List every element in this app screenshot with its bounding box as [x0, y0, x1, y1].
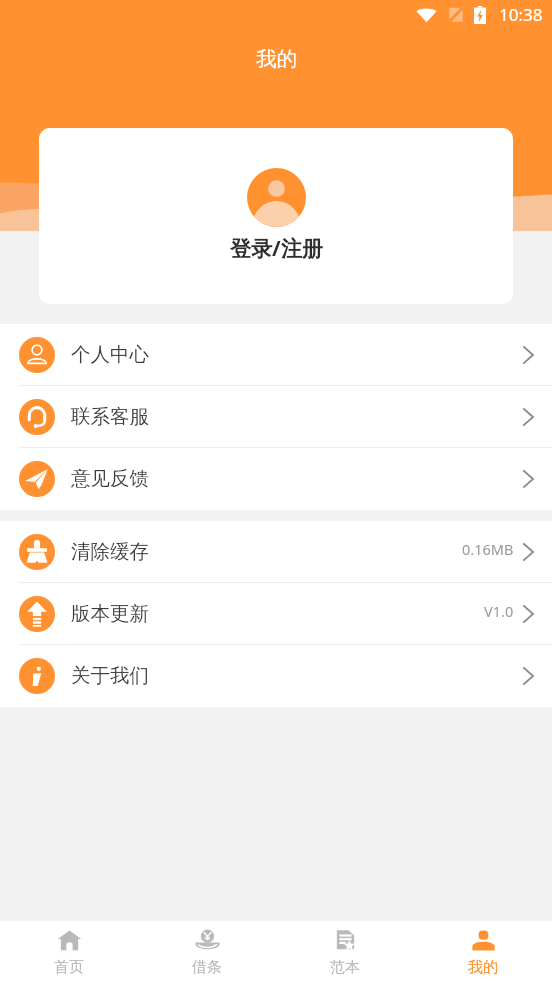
staticText: 我的 — [468, 958, 498, 977]
staticText: 借条 — [192, 958, 222, 977]
staticText: 首页 — [54, 958, 84, 977]
button[interactable]: 清除缓存 — [0, 521, 552, 583]
button[interactable]: 借条 — [138, 921, 276, 981]
staticText: 0.16MB — [462, 539, 514, 559]
staticText: V1.0 — [484, 601, 514, 621]
staticText: 版本更新 — [71, 601, 149, 626]
button[interactable]: 意见反馈 — [0, 448, 552, 510]
button[interactable]: 关于我们 — [0, 645, 552, 707]
staticText: 我的 — [256, 46, 297, 72]
button[interactable]: 联系客服 — [0, 386, 552, 448]
staticText: 意见反馈 — [71, 466, 149, 491]
staticText: 清除缓存 — [71, 539, 149, 564]
staticText: 个人中心 — [71, 342, 149, 367]
staticText: 范本 — [330, 958, 360, 977]
staticText: 关于我们 — [71, 663, 149, 688]
staticText: 10:38 — [499, 3, 543, 26]
button[interactable]: 范本 — [276, 921, 414, 981]
button[interactable]: 版本更新 — [0, 583, 552, 645]
staticText: 登录/注册 — [230, 234, 323, 263]
staticText: 联系客服 — [71, 404, 149, 429]
button[interactable]: 个人中心 — [0, 324, 552, 386]
button[interactable]: 首页 — [0, 921, 138, 981]
button[interactable]: 登录/注册 — [39, 128, 513, 304]
button[interactable]: 我的 — [414, 921, 552, 981]
